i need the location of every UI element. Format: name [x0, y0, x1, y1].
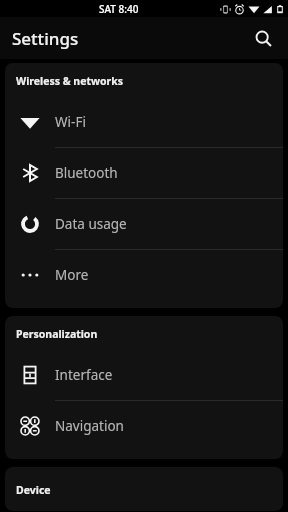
button[interactable]: Bluetooth [5, 148, 283, 199]
staticText: More [55, 266, 89, 284]
button[interactable]: Navigation [5, 401, 283, 451]
button[interactable]: More [5, 250, 283, 300]
staticText: Wi-Fi [55, 113, 86, 131]
staticText: Personalization [16, 327, 98, 341]
staticText: Navigation [55, 417, 124, 435]
button[interactable]: Interface [5, 350, 283, 401]
button[interactable]: Wi-Fi [5, 97, 283, 148]
staticText: Wireless & networks [16, 74, 123, 88]
button[interactable]: Search [246, 21, 280, 55]
button[interactable]: Data usage [5, 199, 283, 250]
staticText: Device [16, 483, 51, 497]
staticText: Settings [12, 27, 79, 50]
staticText: Interface [55, 366, 113, 384]
staticText: Bluetooth [55, 164, 118, 182]
staticText: SAT 8:40 [99, 2, 139, 16]
staticText: Data usage [55, 215, 127, 233]
